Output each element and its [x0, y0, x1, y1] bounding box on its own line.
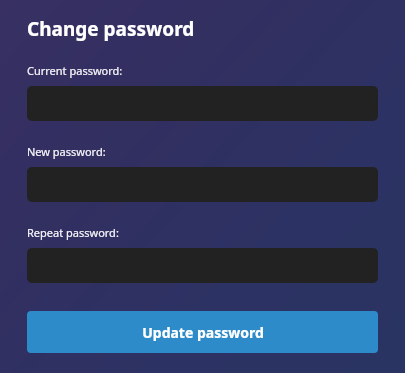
staticText: Repeat password: [27, 225, 119, 240]
staticText: Update password [142, 323, 264, 342]
staticText: Current password: [27, 63, 123, 78]
button[interactable]: Update password [27, 311, 378, 353]
staticText: New password: [27, 144, 106, 159]
staticText: Change password [27, 16, 195, 42]
